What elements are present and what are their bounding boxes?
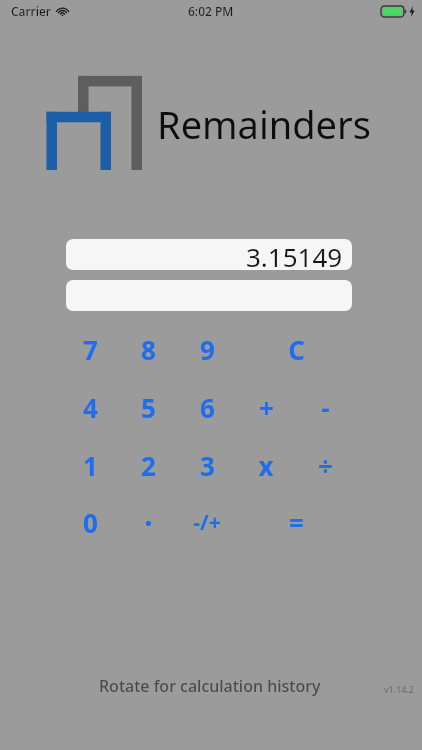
- button[interactable]: 6: [179, 383, 235, 431]
- staticText: -: [321, 390, 330, 425]
- staticText: -/+: [193, 508, 221, 537]
- button[interactable]: Minus: [297, 383, 353, 431]
- staticText: v1.14.2: [384, 683, 414, 695]
- staticText: 3.15149: [246, 239, 343, 270]
- staticText: 6:02 PM: [188, 3, 234, 19]
- button[interactable]: Plus: [238, 383, 294, 431]
- button[interactable]: 9: [179, 325, 235, 373]
- staticText: 2: [141, 448, 156, 483]
- button[interactable]: Clear: [268, 325, 324, 373]
- staticText: 7: [83, 332, 98, 367]
- staticText: x: [258, 448, 274, 483]
- staticText: 8: [141, 332, 156, 367]
- staticText: +: [259, 390, 274, 425]
- button[interactable]: 4: [62, 383, 118, 431]
- button[interactable]: 3: [179, 441, 235, 489]
- staticText: 5: [141, 390, 156, 425]
- staticText: Remainders: [157, 98, 371, 150]
- staticText: ÷: [318, 448, 333, 483]
- button[interactable]: Multiply: [238, 441, 294, 489]
- staticText: 6: [200, 390, 215, 425]
- staticText: Carrier: [11, 3, 51, 19]
- button[interactable]: 1: [62, 441, 118, 489]
- button[interactable]: 3.15149: [66, 239, 352, 270]
- staticText: 0: [83, 505, 98, 540]
- button[interactable]: 5: [120, 383, 176, 431]
- staticText: 9: [200, 332, 215, 367]
- staticText: 3: [200, 448, 215, 483]
- staticText: C: [288, 332, 305, 367]
- staticText: ·: [144, 502, 153, 543]
- button[interactable]: 8: [120, 325, 176, 373]
- staticText: 4: [83, 390, 98, 425]
- button[interactable]: 7: [62, 325, 118, 373]
- button[interactable]: Result field: [66, 280, 352, 311]
- button[interactable]: Divide: [297, 441, 353, 489]
- button[interactable]: Plus minus: [179, 498, 235, 546]
- button[interactable]: 0: [62, 498, 118, 546]
- staticText: =: [289, 505, 304, 540]
- button[interactable]: Equals: [268, 498, 324, 546]
- staticText: 1: [83, 448, 98, 483]
- staticText: Rotate for calculation history: [99, 675, 321, 697]
- button[interactable]: 2: [120, 441, 176, 489]
- button[interactable]: Decimal point: [120, 498, 176, 546]
